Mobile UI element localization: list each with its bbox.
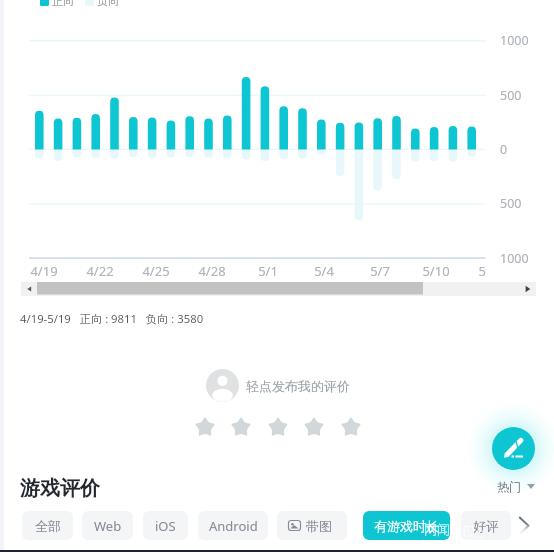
- button[interactable]: 轻点发布我的评价: [206, 369, 350, 402]
- button[interactable]: Android: [198, 511, 268, 540]
- staticText: Android: [209, 517, 258, 535]
- button[interactable]: Rate 5 stars: [340, 416, 362, 438]
- staticText: iOS: [155, 517, 176, 535]
- button[interactable]: Rate 2 stars: [230, 416, 252, 438]
- staticText: Web: [94, 517, 122, 535]
- staticText: 4/25: [136, 262, 176, 280]
- staticText: 全部: [35, 518, 61, 534]
- staticText: 0: [500, 141, 508, 158]
- staticText: 4/19: [24, 262, 64, 280]
- button[interactable]: Scroll chart: [21, 282, 536, 296]
- button[interactable]: 热门: [497, 479, 535, 494]
- button[interactable]: Rate 4 stars: [303, 416, 325, 438]
- staticText: 1000: [500, 250, 529, 267]
- staticText: 4/22: [80, 262, 120, 280]
- button[interactable]: Web: [82, 511, 133, 540]
- staticText: 好评: [473, 518, 499, 534]
- button[interactable]: Rate 3 stars: [267, 416, 289, 438]
- button[interactable]: 有游戏时长: [363, 511, 450, 540]
- staticText: 500: [500, 195, 522, 212]
- staticText: 游戏评价: [20, 476, 100, 501]
- staticText: 5/1: [248, 262, 288, 280]
- staticText: 正向: [52, 0, 74, 8]
- staticText: 5/7: [360, 262, 400, 280]
- staticText: 4/28: [192, 262, 232, 280]
- staticText: 500: [500, 87, 522, 104]
- staticText: 轻点发布我的评价: [246, 378, 350, 394]
- button[interactable]: Write review: [492, 427, 535, 470]
- staticText: 带图: [306, 518, 332, 534]
- staticText: 5/4: [304, 262, 344, 280]
- button[interactable]: 带图: [277, 511, 347, 540]
- staticText: 负向: [97, 0, 119, 8]
- staticText: 网闻: [424, 521, 450, 537]
- staticText: 1000: [500, 32, 529, 49]
- staticText: 热门: [497, 479, 521, 494]
- staticText: 5/13: [472, 262, 486, 280]
- button[interactable]: 全部: [22, 511, 73, 540]
- button[interactable]: Rate 1 stars: [194, 416, 216, 438]
- button[interactable]: More filters: [514, 512, 536, 534]
- staticText: 有游戏时长: [374, 518, 439, 534]
- staticText: 5/10: [416, 262, 456, 280]
- button[interactable]: 好评: [461, 511, 511, 540]
- staticText: 4/19-5/19 正向 : 9811 负向 : 3580: [20, 311, 204, 326]
- button[interactable]: iOS: [143, 511, 188, 540]
